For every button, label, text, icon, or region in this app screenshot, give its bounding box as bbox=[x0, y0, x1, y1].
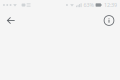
button[interactable]: Info bbox=[99, 10, 119, 30]
staticText: 63% bbox=[84, 1, 94, 9]
staticText: 12:39 bbox=[104, 1, 117, 9]
button[interactable]: Back bbox=[1, 10, 21, 30]
